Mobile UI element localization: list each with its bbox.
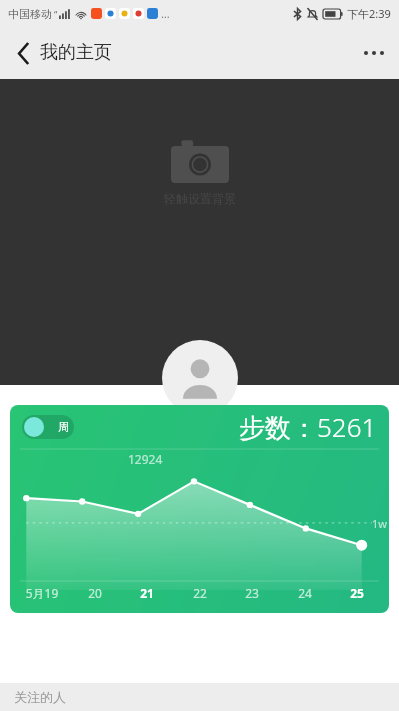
staticText: 下午2:39 <box>347 6 391 21</box>
staticText: 步数：5261 <box>239 409 377 445</box>
button[interactable]: 周 <box>22 415 74 439</box>
button[interactable]: Profile photo <box>162 340 238 416</box>
button[interactable]: Set background <box>0 79 399 385</box>
staticText: 中国移动 <box>8 7 52 21</box>
staticText: 我的主页 <box>40 41 112 64</box>
button[interactable]: More options <box>349 28 399 78</box>
staticText: “ <box>54 8 58 20</box>
staticText: 12924 <box>128 451 163 467</box>
button[interactable]: Back <box>0 30 46 76</box>
staticText: 24 <box>279 585 331 601</box>
staticText: 20 <box>69 585 121 601</box>
staticText: 21 <box>121 585 173 601</box>
staticText: 5月19 <box>16 585 68 601</box>
button[interactable]: 周 <box>10 405 389 613</box>
button[interactable]: 关注的人 <box>0 683 399 711</box>
staticText: 1w <box>372 516 387 531</box>
staticText: … <box>161 6 170 21</box>
staticText: 轻触设置背景 <box>164 191 236 206</box>
staticText: 周 <box>58 420 69 434</box>
staticText: 25 <box>331 585 383 601</box>
staticText: 关注的人 <box>14 689 66 705</box>
staticText: 23 <box>226 585 278 601</box>
staticText: 22 <box>174 585 226 601</box>
